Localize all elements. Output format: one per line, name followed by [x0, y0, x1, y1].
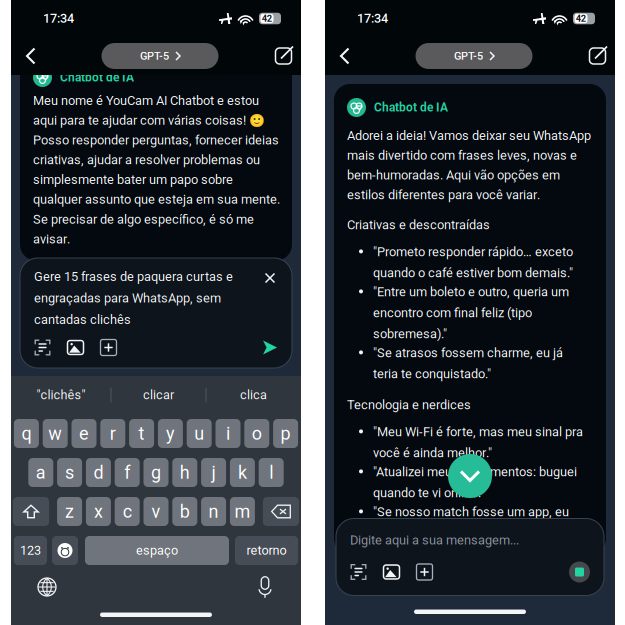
button[interactable]: Scroll to bottom — [448, 454, 492, 498]
button[interactable]: x — [86, 497, 111, 526]
staticText: "Se atrasos fossem charme, eu já teria t… — [373, 345, 563, 381]
staticText: r — [110, 423, 116, 444]
button[interactable]: Dictate — [254, 576, 276, 598]
staticText: w — [48, 423, 62, 444]
button[interactable]: GPT-5 — [415, 43, 532, 69]
button[interactable]: clicar — [111, 377, 205, 413]
button[interactable]: r — [100, 419, 125, 448]
staticText: "clichês" — [36, 388, 85, 402]
button[interactable]: New chat — [587, 43, 607, 69]
staticText: u — [194, 423, 204, 444]
button[interactable]: Scan text — [350, 563, 367, 580]
button[interactable]: z — [57, 497, 82, 526]
staticText: clica — [240, 388, 267, 402]
button[interactable]: b — [172, 497, 197, 526]
staticText: e — [79, 423, 89, 444]
button[interactable]: f — [115, 458, 140, 487]
staticText: k — [238, 462, 247, 483]
button[interactable]: l — [259, 458, 284, 487]
button[interactable]: New chat — [273, 43, 293, 69]
staticText: m — [234, 501, 250, 522]
staticText: z — [65, 501, 74, 522]
button[interactable]: u — [187, 419, 212, 448]
staticText: Chatbot de IA — [374, 100, 448, 115]
button[interactable]: Photos — [383, 563, 400, 580]
staticText: d — [93, 462, 103, 483]
staticText: Digite aqui a sua mensagem... — [350, 532, 519, 547]
button[interactable]: Attach — [100, 339, 117, 356]
button[interactable]: Shift — [13, 497, 49, 526]
staticText: 123 — [20, 543, 41, 558]
button[interactable]: Scan text — [34, 339, 51, 356]
button[interactable]: d — [86, 458, 111, 487]
button[interactable]: h — [172, 458, 197, 487]
button[interactable]: w — [43, 419, 68, 448]
button[interactable]: g — [143, 458, 168, 487]
button[interactable]: i — [215, 419, 240, 448]
staticText: retorno — [247, 543, 287, 558]
button[interactable]: Attach — [416, 563, 433, 580]
button[interactable]: k — [230, 458, 255, 487]
button[interactable]: Stop — [569, 561, 590, 582]
button[interactable]: j — [201, 458, 226, 487]
button[interactable]: q — [14, 419, 39, 448]
button[interactable]: GPT-5 — [101, 43, 218, 69]
staticText: espaço — [136, 543, 178, 558]
staticText: a — [36, 462, 46, 483]
button[interactable]: Delete — [263, 497, 299, 526]
button[interactable]: a — [28, 458, 53, 487]
staticText: 17:34 — [43, 11, 74, 26]
staticText: v — [151, 501, 160, 522]
staticText: GPT-5 — [454, 50, 483, 62]
staticText: f — [124, 462, 130, 483]
staticText: Meu nome é YouCam AI Chatbot e estou aqu… — [33, 93, 280, 247]
button[interactable]: 123 — [14, 536, 47, 565]
staticText: c — [123, 501, 132, 522]
staticText: x — [94, 501, 103, 522]
staticText: g — [151, 462, 161, 483]
staticText: q — [21, 423, 31, 444]
staticText: Gere 15 frases de paquera curtas e engra… — [34, 269, 233, 327]
button[interactable]: s — [57, 458, 82, 487]
button[interactable]: Photos — [67, 339, 84, 356]
button[interactable]: n — [201, 497, 226, 526]
staticText: Tecnologia e nerdices — [347, 397, 471, 412]
staticText: 42 — [262, 13, 272, 24]
button[interactable]: m — [230, 497, 255, 526]
button[interactable]: Send — [262, 339, 278, 355]
button[interactable]: c — [115, 497, 140, 526]
staticText: "Atualizei meus sentimentos: buguei quan… — [373, 464, 577, 500]
button[interactable]: y — [158, 419, 183, 448]
staticText: s — [65, 462, 74, 483]
button[interactable]: o — [244, 419, 269, 448]
staticText: o — [252, 423, 262, 444]
button[interactable]: Back — [341, 43, 361, 69]
staticText: "Entre um boleto e outro, queria um enco… — [373, 284, 569, 341]
staticText: 42 — [576, 13, 586, 24]
button[interactable]: p — [273, 419, 298, 448]
button[interactable]: Clear — [262, 270, 278, 286]
staticText: j — [212, 462, 216, 483]
button[interactable]: espaço — [85, 536, 229, 565]
staticText: Chatbot de IA — [60, 70, 134, 85]
button[interactable]: v — [143, 497, 168, 526]
staticText: h — [180, 462, 190, 483]
staticText: Criativas e descontraídas — [347, 217, 490, 232]
button[interactable]: clica — [206, 377, 300, 413]
button[interactable]: Emoji — [52, 536, 78, 565]
button[interactable]: "clichês" — [11, 377, 110, 413]
staticText: 17:34 — [357, 11, 388, 26]
button[interactable]: retorno — [235, 536, 298, 565]
staticText: i — [226, 423, 230, 444]
button[interactable]: t — [129, 419, 154, 448]
button[interactable]: Switch keyboard — [36, 576, 58, 598]
button[interactable]: e — [71, 419, 96, 448]
button[interactable]: Back — [27, 43, 47, 69]
staticText: "Meu Wi-Fi é forte, mas meu sinal pra vo… — [373, 424, 583, 460]
staticText: y — [166, 423, 175, 444]
staticText: n — [209, 501, 219, 522]
staticText: clicar — [143, 388, 174, 402]
staticText: t — [139, 423, 145, 444]
staticText: p — [281, 423, 291, 444]
staticText: l — [269, 462, 273, 483]
